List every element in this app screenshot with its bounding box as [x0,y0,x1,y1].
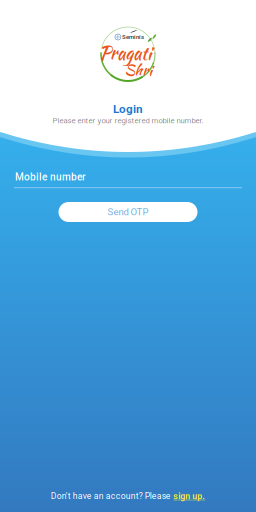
staticText: Login [113,102,143,116]
button[interactable]: Don't have an account? Please [51,491,205,501]
staticText: Pragati [99,40,151,66]
staticText: Please enter your registered mobile numb… [52,116,203,125]
staticText: Seminis [122,33,144,41]
staticText: Mobile number [15,171,86,183]
button[interactable]: Send OTP [58,202,197,222]
staticText: sign up. [173,491,205,501]
staticText: Shri [124,59,151,81]
staticText: Send OTP [107,206,148,218]
staticText: Don't have an account? Please [51,491,171,501]
